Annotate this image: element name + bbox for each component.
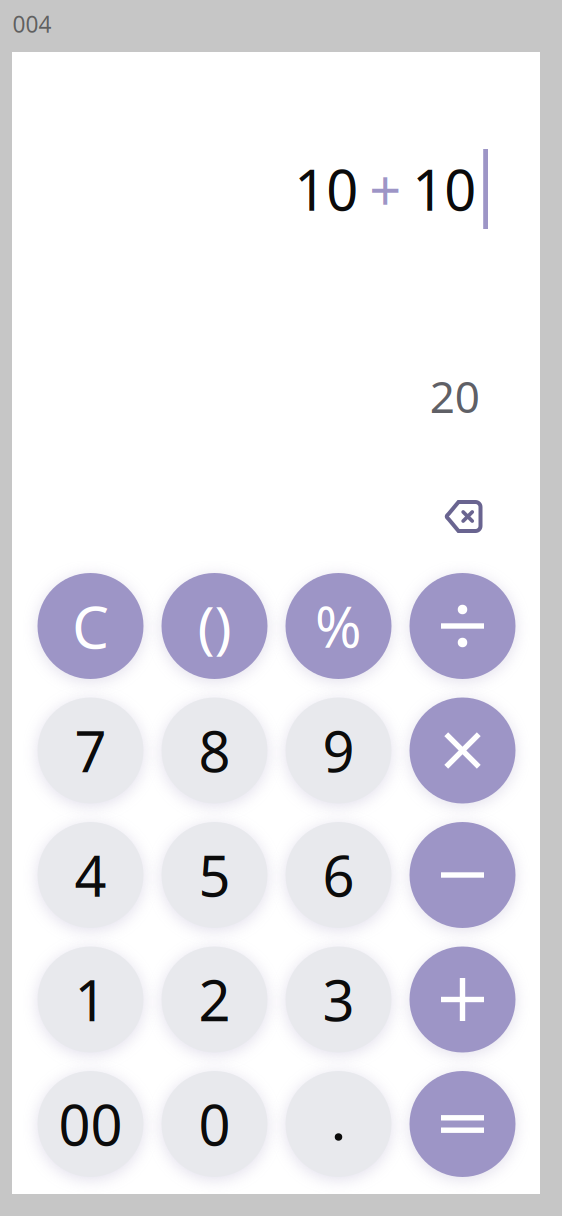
staticText: 2: [198, 962, 230, 1037]
staticText: 20: [430, 367, 480, 425]
button[interactable]: Multiply: [409, 697, 515, 803]
staticText: 0: [198, 1087, 230, 1161]
button[interactable]: 4: [37, 822, 143, 928]
staticText: (): [197, 588, 231, 664]
staticText: 1: [74, 962, 106, 1037]
button[interactable]: 00: [37, 1071, 143, 1177]
button[interactable]: 0: [161, 1071, 267, 1177]
staticText: 004: [12, 9, 51, 39]
staticText: +: [369, 152, 401, 226]
staticText: 5: [198, 838, 230, 912]
staticText: 10: [294, 152, 358, 226]
button[interactable]: C: [37, 573, 143, 679]
staticText: 6: [322, 838, 354, 912]
button[interactable]: Minus: [409, 822, 515, 928]
button[interactable]: Plus: [409, 946, 515, 1052]
button[interactable]: Decimal point: [285, 1071, 391, 1177]
staticText: %: [315, 589, 362, 663]
button[interactable]: %: [285, 573, 391, 679]
staticText: C: [72, 587, 109, 665]
staticText: 8: [198, 713, 230, 788]
button[interactable]: 5: [161, 822, 267, 928]
button[interactable]: Equals: [409, 1071, 515, 1177]
button[interactable]: 7: [37, 697, 143, 803]
button[interactable]: 1: [37, 946, 143, 1052]
staticText: 3: [322, 962, 354, 1037]
button[interactable]: (): [161, 573, 267, 679]
staticText: 4: [74, 838, 106, 912]
staticText: 9: [322, 713, 354, 788]
staticText: 7: [74, 713, 106, 788]
staticText: 00: [58, 1087, 122, 1161]
button[interactable]: 6: [285, 822, 391, 928]
button[interactable]: 9: [285, 697, 391, 803]
button[interactable]: Divide: [409, 573, 515, 679]
button[interactable]: 3: [285, 946, 391, 1052]
button[interactable]: 2: [161, 946, 267, 1052]
staticText: 10: [412, 152, 476, 226]
button[interactable]: 8: [161, 697, 267, 803]
button[interactable]: Delete: [444, 500, 482, 533]
